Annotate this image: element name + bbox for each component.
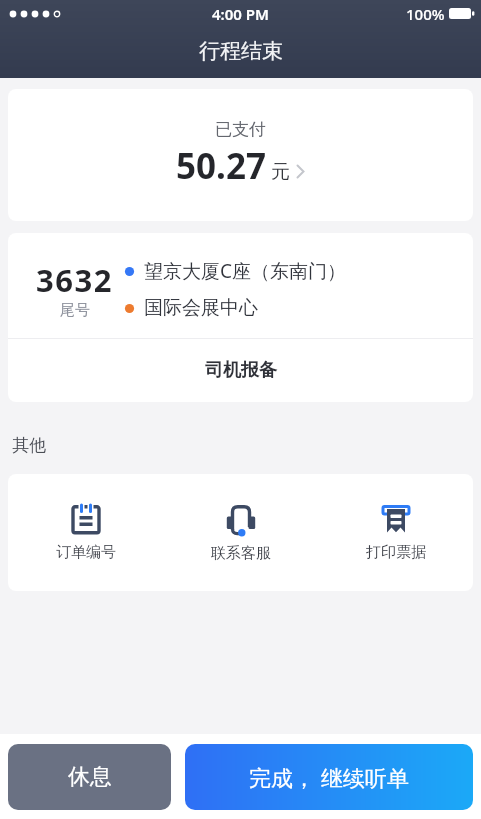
button[interactable]: 联系客服 [163,474,318,591]
button[interactable]: 订单编号 [8,474,163,591]
staticText: 国际会展中心 [144,296,258,320]
staticText: 100% [406,4,445,24]
staticText: 4:00 PM [212,4,269,24]
button[interactable]: 完成， 继续听单 [185,744,473,810]
staticText: 已支付 [215,119,266,140]
button[interactable]: 已支付 [8,89,473,221]
button[interactable]: 打印票据 [318,474,473,591]
staticText: 行程结束 [199,38,283,64]
staticText: 尾号 [60,301,90,320]
staticText: 完成， 继续听单 [249,762,409,792]
staticText: 休息 [68,763,112,791]
staticText: 联系客服 [211,544,271,563]
staticText: 打印票据 [366,543,426,562]
button[interactable]: 司机报备 [8,339,473,402]
staticText: 订单编号 [56,543,116,562]
button[interactable]: 休息 [8,744,171,810]
staticText: 司机报备 [205,359,277,382]
staticText: 其他 [12,435,46,456]
staticText: 元 [271,160,290,184]
staticText: 3632 [36,259,113,301]
staticText: 望京大厦C座（东南门） [144,258,347,284]
staticText: 50.27 [176,142,266,190]
